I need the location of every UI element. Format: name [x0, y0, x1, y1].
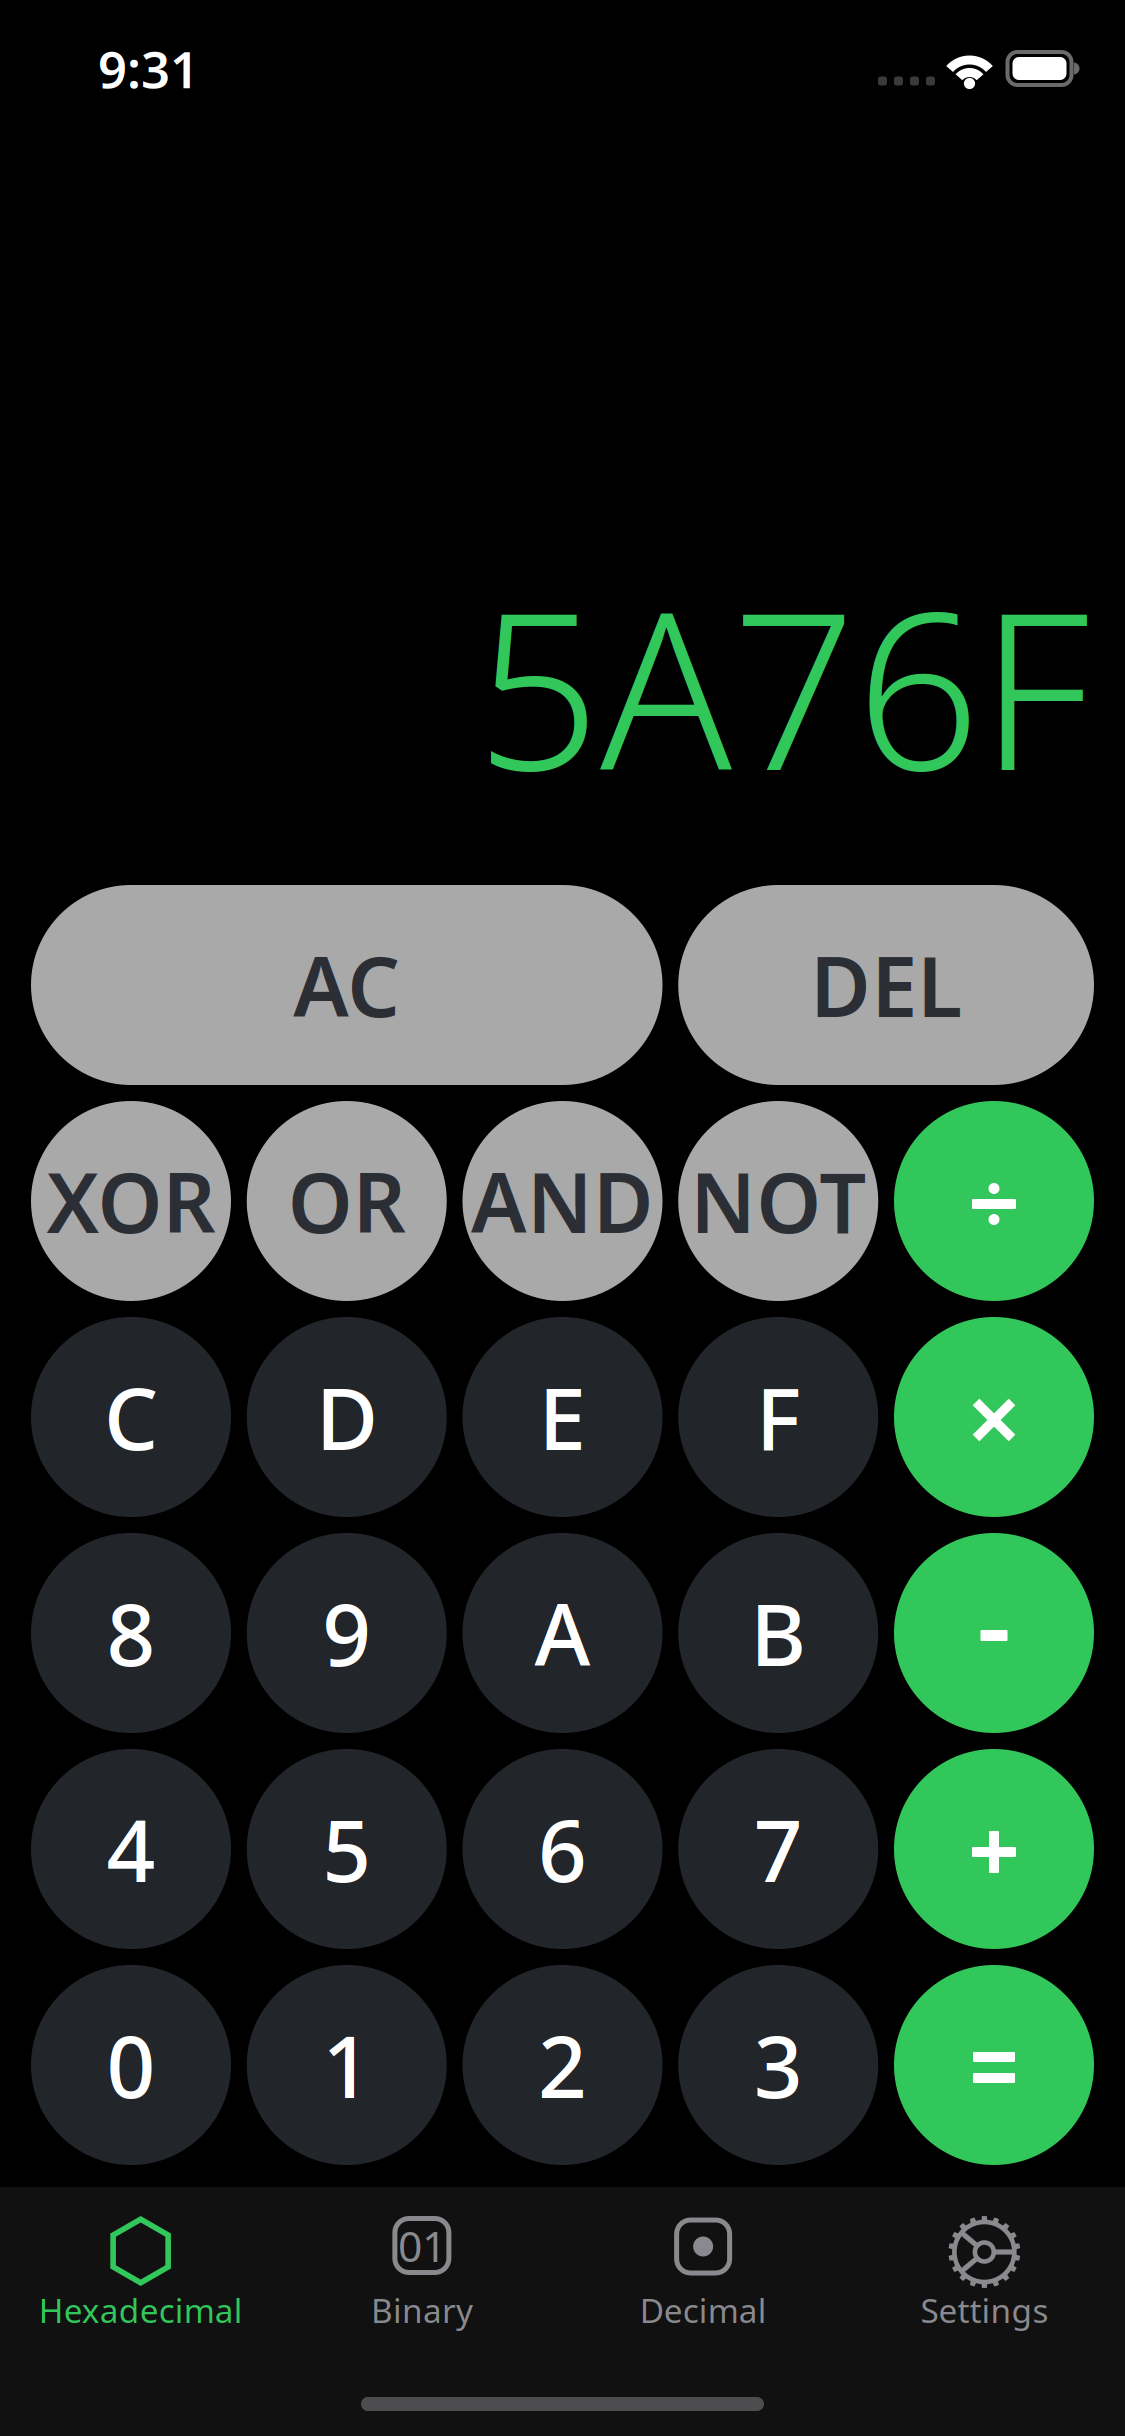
staticText: F	[756, 1360, 801, 1474]
staticText: A	[534, 1576, 590, 1690]
staticText: Binary	[371, 2288, 473, 2332]
staticText: 0	[106, 2008, 155, 2122]
button[interactable]: 4	[31, 1749, 231, 1949]
button[interactable]: NOT	[678, 1101, 878, 1301]
staticText: 9:31	[98, 35, 199, 102]
staticText: AC	[293, 930, 400, 1040]
staticText: 4	[106, 1792, 155, 1906]
button[interactable]: C	[31, 1317, 231, 1517]
staticText: 3	[754, 2008, 803, 2122]
button[interactable]: AC	[31, 885, 662, 1085]
button[interactable]: Settings	[844, 2187, 1125, 2332]
button[interactable]: 2	[462, 1965, 662, 2165]
button[interactable]: Plus	[894, 1749, 1094, 1949]
button[interactable]: Minus	[894, 1533, 1094, 1733]
staticText: XOR	[46, 1146, 215, 1256]
staticText: Hexadecimal	[39, 2288, 243, 2332]
button[interactable]: Equals	[894, 1965, 1094, 2165]
staticText: E	[538, 1360, 586, 1474]
staticText: 6	[538, 1792, 587, 1906]
button[interactable]: 6	[462, 1749, 662, 1949]
staticText: Decimal	[640, 2288, 767, 2332]
button[interactable]: Decimal	[562, 2187, 844, 2332]
button[interactable]: 7	[678, 1749, 878, 1949]
staticText: 01	[398, 2217, 446, 2274]
button[interactable]: 0	[31, 1965, 231, 2165]
staticText: NOT	[690, 1146, 866, 1256]
button[interactable]: 01	[281, 2187, 562, 2332]
staticText: 2	[538, 2008, 587, 2122]
staticText: 1	[322, 2008, 371, 2122]
staticText: AND	[471, 1146, 654, 1256]
button[interactable]: DEL	[678, 885, 1094, 1085]
button[interactable]: XOR	[31, 1101, 231, 1301]
button[interactable]: F	[678, 1317, 878, 1517]
button[interactable]: E	[462, 1317, 662, 1517]
button[interactable]: Hexadecimal	[0, 2187, 281, 2332]
button[interactable]: Multiply	[894, 1317, 1094, 1517]
staticText: Settings	[920, 2288, 1048, 2332]
button[interactable]: D	[247, 1317, 447, 1517]
staticText: 9	[322, 1576, 371, 1690]
staticText: OR	[288, 1146, 406, 1256]
button[interactable]: B	[678, 1533, 878, 1733]
staticText: D	[316, 1360, 378, 1474]
button[interactable]: 1	[247, 1965, 447, 2165]
staticText: C	[104, 1360, 158, 1474]
button[interactable]: 5	[247, 1749, 447, 1949]
button[interactable]: AND	[462, 1101, 662, 1301]
button[interactable]: 9	[247, 1533, 447, 1733]
staticText: 7	[754, 1792, 803, 1906]
staticText: 5A76F	[476, 541, 1090, 830]
button[interactable]: Divide	[894, 1101, 1094, 1301]
staticText: 5	[322, 1792, 371, 1906]
staticText: 8	[106, 1576, 155, 1690]
button[interactable]: 8	[31, 1533, 231, 1733]
button[interactable]: 3	[678, 1965, 878, 2165]
staticText: DEL	[810, 930, 962, 1040]
button[interactable]: A	[462, 1533, 662, 1733]
staticText: B	[750, 1576, 806, 1690]
button[interactable]: OR	[247, 1101, 447, 1301]
